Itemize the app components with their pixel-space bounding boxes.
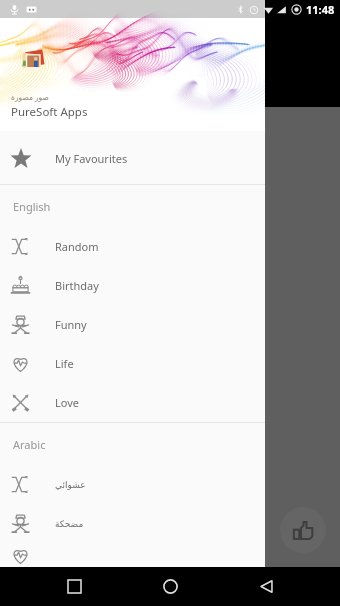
button[interactable]: Like — [280, 507, 326, 553]
button[interactable]: عشوائي — [0, 465, 265, 504]
button[interactable] — [0, 543, 265, 567]
staticText: Love — [55, 395, 79, 410]
button[interactable]: Love — [0, 383, 265, 422]
button[interactable]: Birthday — [0, 266, 265, 305]
staticText: 11:48 — [306, 2, 335, 17]
staticText: Arabic — [13, 437, 46, 452]
staticText: صور مصورة — [11, 92, 49, 102]
button[interactable]: Life — [0, 344, 265, 383]
staticText: Birthday — [55, 278, 99, 293]
button[interactable]: مضحكة — [0, 504, 265, 543]
staticText: English — [13, 199, 51, 214]
button[interactable]: My Favourites — [0, 132, 265, 184]
button[interactable]: Home — [148, 567, 192, 606]
staticText: Random — [55, 239, 99, 254]
staticText: Funny — [55, 317, 87, 332]
button[interactable]: Random — [0, 227, 265, 266]
staticText: My Favourites — [55, 151, 128, 166]
button[interactable]: Recents — [52, 567, 96, 606]
button[interactable]: Back — [244, 567, 288, 606]
button[interactable]: Funny — [0, 305, 265, 344]
staticText: عشوائي — [55, 480, 86, 490]
staticText: PureSoft Apps — [11, 104, 88, 120]
staticText: مضحكة — [55, 519, 84, 529]
staticText: Life — [55, 356, 74, 371]
